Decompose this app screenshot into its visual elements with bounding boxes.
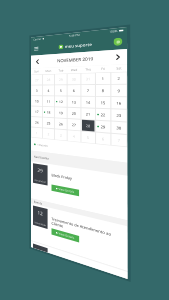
staticText: 25 xyxy=(38,197,47,207)
button[interactable]: 11 xyxy=(29,140,55,163)
button[interactable]: 14 xyxy=(114,140,141,163)
button[interactable]: 28 xyxy=(29,90,55,113)
button[interactable]: 2 xyxy=(29,215,55,238)
staticText: 11 xyxy=(38,147,47,157)
button[interactable]: 29 xyxy=(57,90,83,113)
button[interactable]: 5 xyxy=(114,215,141,238)
staticText: 31 xyxy=(123,97,132,107)
button[interactable]: 30 xyxy=(85,90,112,113)
staticText: 28 xyxy=(38,97,47,107)
button[interactable]: 21 xyxy=(114,165,141,188)
button[interactable]: 3 xyxy=(57,215,83,238)
staticText: meu suporte xyxy=(79,22,136,34)
staticText: 14 xyxy=(123,147,132,157)
button[interactable]: 13 xyxy=(85,140,112,163)
button[interactable]: 25 xyxy=(29,190,55,213)
staticText: 28 xyxy=(123,197,132,207)
button[interactable]: 12 xyxy=(57,140,83,163)
staticText: 7 xyxy=(125,122,130,132)
staticText: 5 xyxy=(68,122,73,132)
button[interactable]: 4 xyxy=(29,115,55,138)
button[interactable]: 31 xyxy=(114,90,141,113)
staticText: Wed xyxy=(92,77,106,86)
staticText: 18 xyxy=(38,172,47,182)
button[interactable]: 19 xyxy=(57,165,83,188)
staticText: 19 xyxy=(66,172,75,182)
staticText: 29 xyxy=(66,97,75,107)
staticText: Tue xyxy=(65,77,76,86)
staticText: 4 xyxy=(40,122,45,132)
staticText: = Events xyxy=(15,250,41,259)
staticText: Thu xyxy=(122,77,134,86)
staticText: 21 xyxy=(123,172,132,182)
button[interactable]: 20 xyxy=(85,165,112,188)
button[interactable]: 5 xyxy=(57,115,83,138)
staticText: Mon xyxy=(35,77,49,86)
button[interactable]: 4 xyxy=(85,215,112,238)
button[interactable]: 18 xyxy=(29,165,55,188)
staticText: 5 xyxy=(125,222,130,232)
staticText: 6 xyxy=(96,122,101,132)
button[interactable]: 26 xyxy=(57,190,83,213)
staticText: NOVEMBER 2019 xyxy=(62,53,138,66)
button[interactable]: 6 xyxy=(85,115,112,138)
staticText: 2 xyxy=(40,222,45,232)
staticText: 3 xyxy=(68,222,73,232)
staticText: 30 xyxy=(94,97,103,107)
staticText: 4 xyxy=(96,222,101,232)
button[interactable]: 28 xyxy=(114,190,141,213)
button[interactable]: 7 xyxy=(114,115,141,138)
staticText: 12 xyxy=(66,147,75,157)
